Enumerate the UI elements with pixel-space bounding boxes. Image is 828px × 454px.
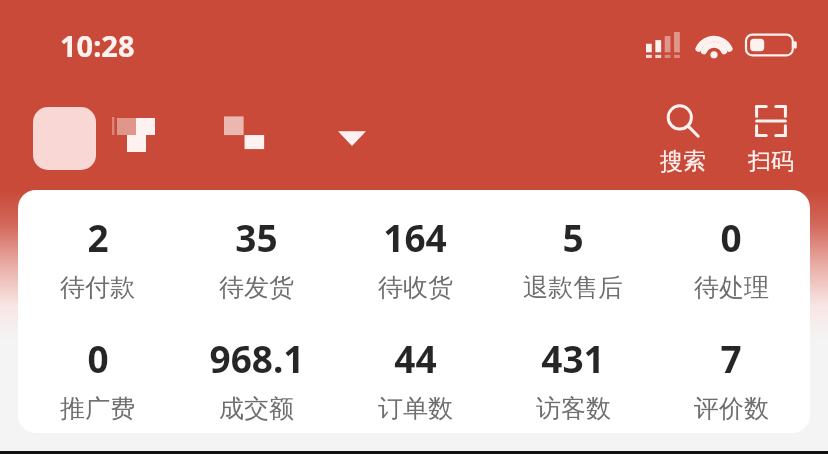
staticText: 订单数 — [378, 393, 453, 424]
staticText: 35 — [235, 212, 278, 262]
staticText: 访客数 — [536, 393, 611, 424]
button[interactable]: 968.1 — [177, 333, 336, 424]
button[interactable]: 0 — [652, 212, 810, 303]
staticText: 待处理 — [694, 272, 769, 303]
button[interactable]: 164 — [336, 212, 494, 303]
staticText: 164 — [383, 212, 447, 262]
staticText: 44 — [394, 333, 437, 383]
staticText: 退款售后 — [523, 272, 623, 303]
staticText: 5 — [562, 212, 584, 262]
button[interactable]: 35 — [177, 212, 336, 303]
staticText: 0 — [720, 212, 742, 262]
staticText: 成交额 — [219, 393, 294, 424]
staticText: 0 — [87, 333, 109, 383]
button[interactable]: Shop avatar — [33, 107, 96, 170]
staticText: 推广费 — [60, 393, 135, 424]
staticText: 搜索 — [660, 147, 706, 176]
button[interactable]: 44 — [336, 333, 494, 424]
staticText: 431 — [541, 333, 605, 383]
staticText: 968.1 — [209, 333, 305, 383]
staticText: 待发货 — [219, 272, 294, 303]
button[interactable]: 扫码 — [748, 101, 794, 176]
staticText: 待收货 — [378, 272, 453, 303]
staticText: 待付款 — [60, 272, 135, 303]
button[interactable]: 5 — [494, 212, 652, 303]
button[interactable]: 2 — [18, 212, 177, 303]
staticText: 扫码 — [748, 147, 794, 176]
staticText: 2 — [87, 212, 109, 262]
staticText: 7 — [720, 333, 742, 383]
button[interactable]: 431 — [494, 333, 652, 424]
button[interactable]: 搜索 — [660, 101, 706, 176]
staticText: 10:28 — [60, 26, 135, 65]
button[interactable]: 7 — [652, 333, 810, 424]
button[interactable]: 0 — [18, 333, 177, 424]
button[interactable]: Shop name — [112, 103, 366, 173]
staticText: 评价数 — [694, 393, 769, 424]
